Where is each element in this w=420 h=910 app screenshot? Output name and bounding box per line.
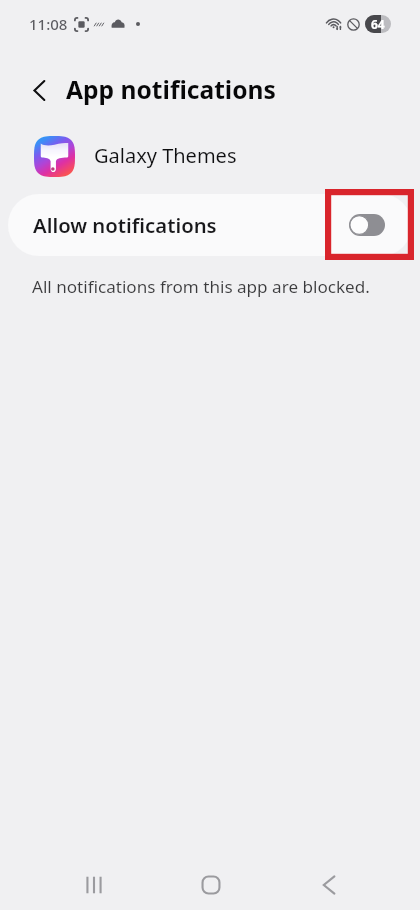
button[interactable]: Allow notifications — [8, 194, 412, 256]
staticText: 11:08 — [29, 14, 68, 34]
staticText: 64 — [371, 16, 385, 32]
staticText: App notifications — [66, 73, 276, 107]
button[interactable]: Navigate up — [18, 70, 59, 111]
button[interactable]: Recent apps — [66, 859, 122, 910]
button[interactable]: Back — [301, 859, 357, 910]
button[interactable]: Allow notifications — [349, 214, 385, 236]
staticText: Galaxy Themes — [94, 142, 237, 169]
staticText: Allow notifications — [33, 211, 217, 239]
button[interactable]: Home — [183, 859, 239, 910]
staticText: All notifications from this app are bloc… — [32, 275, 370, 298]
